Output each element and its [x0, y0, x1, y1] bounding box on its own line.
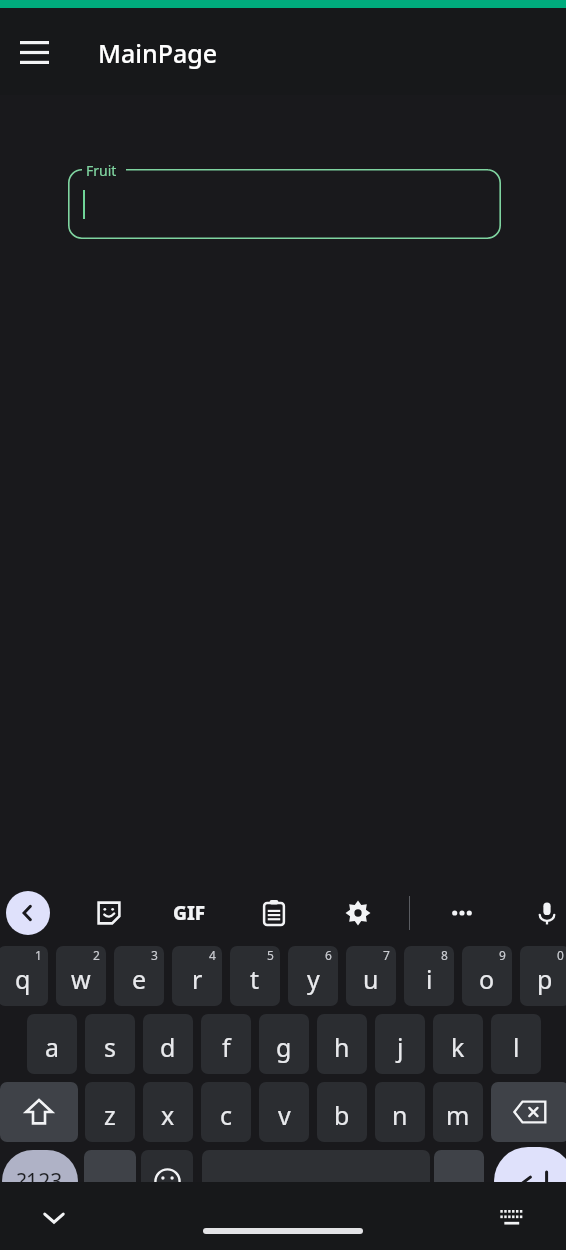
button[interactable]: Open navigation menu — [8, 26, 60, 78]
staticText: b — [334, 1098, 350, 1132]
button[interactable]: . — [434, 1150, 484, 1212]
button[interactable]: k — [433, 1014, 483, 1074]
button[interactable]: a — [27, 1014, 77, 1074]
button[interactable]: b — [317, 1082, 367, 1142]
button[interactable]: m — [433, 1082, 483, 1142]
staticText: 4 — [209, 947, 216, 963]
button[interactable]: Hide keyboard — [30, 1194, 78, 1242]
staticText: . — [456, 1173, 463, 1206]
button[interactable]: GIF — [165, 889, 213, 937]
staticText: e — [132, 962, 147, 996]
staticText: 8 — [441, 947, 448, 963]
staticText: v — [278, 1098, 291, 1132]
staticText: a — [45, 1030, 60, 1064]
staticText: 5 — [267, 947, 274, 963]
button[interactable]: r — [172, 946, 222, 1006]
button[interactable]: p — [520, 946, 566, 1006]
staticText: 1 — [35, 947, 42, 963]
button[interactable]: v — [259, 1082, 309, 1142]
staticText: Fruit — [86, 161, 117, 180]
staticText: m — [446, 1098, 470, 1132]
button[interactable]: n — [375, 1082, 425, 1142]
button[interactable]: Back — [6, 891, 50, 935]
staticText: 7 — [383, 947, 390, 963]
button[interactable]: Fruit — [68, 169, 501, 239]
staticText: u — [363, 962, 379, 996]
staticText: x — [161, 1098, 175, 1132]
button[interactable]: c — [201, 1082, 251, 1142]
button[interactable]: Shift — [0, 1082, 78, 1142]
staticText: k — [451, 1030, 465, 1064]
staticText: , — [107, 1174, 114, 1207]
staticText: q — [15, 962, 31, 996]
staticText: z — [104, 1098, 116, 1132]
button[interactable]: Change keyboard — [488, 1194, 536, 1242]
staticText: j — [397, 1030, 404, 1064]
staticText: i — [426, 962, 433, 996]
button[interactable]: x — [143, 1082, 193, 1142]
staticText: c — [220, 1098, 233, 1132]
staticText: y — [307, 962, 320, 996]
staticText: GIF — [173, 900, 206, 926]
button[interactable]: f — [201, 1014, 251, 1074]
staticText: f — [222, 1030, 231, 1064]
staticText: s — [104, 1030, 116, 1064]
button[interactable]: , — [84, 1150, 136, 1212]
button[interactable]: Voice input — [523, 889, 566, 937]
button[interactable]: w — [56, 946, 106, 1006]
staticText: p — [537, 962, 553, 996]
staticText: 2 — [93, 947, 100, 963]
staticText: o — [479, 962, 495, 996]
staticText: n — [392, 1098, 408, 1132]
staticText: h — [334, 1030, 350, 1064]
button[interactable]: Backspace — [491, 1082, 566, 1142]
button[interactable]: d — [143, 1014, 193, 1074]
button[interactable]: q — [0, 946, 48, 1006]
staticText: t — [250, 962, 260, 996]
button[interactable]: Clipboard — [250, 889, 298, 937]
button[interactable]: s — [85, 1014, 135, 1074]
staticText: 9 — [499, 947, 506, 963]
staticText: ?123 — [17, 1167, 63, 1196]
staticText: d — [160, 1030, 176, 1064]
button[interactable]: Stickers — [85, 889, 133, 937]
button[interactable]: g — [259, 1014, 309, 1074]
staticText: r — [192, 962, 203, 996]
button[interactable]: u — [346, 946, 396, 1006]
button[interactable]: Emoji — [141, 1150, 193, 1212]
staticText: g — [276, 1030, 292, 1064]
button[interactable]: o — [462, 946, 512, 1006]
button[interactable]: Space — [202, 1150, 430, 1212]
staticText: MainPage — [98, 36, 218, 70]
button[interactable]: y — [288, 946, 338, 1006]
staticText: 6 — [325, 947, 332, 963]
button[interactable]: l — [491, 1014, 541, 1074]
button[interactable]: ?123 — [2, 1150, 78, 1212]
staticText: 0 — [557, 947, 564, 963]
button[interactable]: i — [404, 946, 454, 1006]
button[interactable]: h — [317, 1014, 367, 1074]
button[interactable]: z — [85, 1082, 135, 1142]
button[interactable]: Settings — [334, 889, 382, 937]
button[interactable]: More options — [438, 889, 486, 937]
button[interactable]: j — [375, 1014, 425, 1074]
staticText: l — [513, 1030, 520, 1064]
button[interactable]: e — [114, 946, 164, 1006]
staticText: 3 — [151, 947, 158, 963]
button[interactable]: Enter — [494, 1147, 566, 1215]
staticText: w — [71, 962, 91, 996]
button[interactable]: t — [230, 946, 280, 1006]
